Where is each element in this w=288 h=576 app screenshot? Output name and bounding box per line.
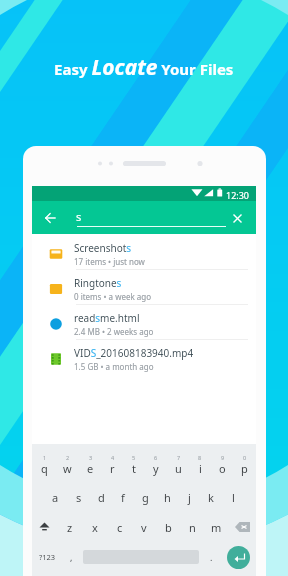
staticText: s xyxy=(76,209,82,224)
staticText: Ringtones xyxy=(74,276,122,290)
button[interactable]: 3 xyxy=(79,448,101,482)
button[interactable]: VIDS_201608183940.mp4 xyxy=(32,339,256,374)
button[interactable]: ?123 xyxy=(32,542,62,572)
staticText: 9 xyxy=(221,454,225,461)
button[interactable]: h xyxy=(156,482,178,512)
button[interactable]: x xyxy=(82,512,107,542)
staticText: c xyxy=(117,520,123,535)
button[interactable]: readsme.html xyxy=(32,304,256,339)
button[interactable]: v xyxy=(132,512,156,542)
button[interactable]: 5 xyxy=(123,448,145,482)
button[interactable]: a xyxy=(44,482,67,512)
button[interactable]: 4 xyxy=(101,448,123,482)
staticText: k xyxy=(208,490,214,505)
staticText: readsme.html xyxy=(74,311,140,325)
staticText: 1 xyxy=(43,454,47,461)
staticText: 2.4 MB • 2 weeks ago xyxy=(74,326,154,337)
staticText: a xyxy=(52,490,59,505)
staticText: x xyxy=(92,520,98,535)
button[interactable]: k xyxy=(200,482,222,512)
button[interactable]: 2 xyxy=(56,448,79,482)
staticText: z xyxy=(67,520,73,535)
button[interactable]: s xyxy=(67,482,90,512)
staticText: . xyxy=(210,551,213,563)
staticText: t xyxy=(132,461,136,476)
button[interactable]: 7 xyxy=(167,448,189,482)
staticText: 1.5 GB • a month ago xyxy=(74,361,154,372)
button[interactable]: l xyxy=(222,482,244,512)
button[interactable]: n xyxy=(180,512,204,542)
staticText: v xyxy=(141,520,147,535)
staticText: s xyxy=(76,490,82,505)
staticText: g xyxy=(142,490,149,505)
button[interactable]: 0 xyxy=(233,448,255,482)
staticText: 12:30 xyxy=(226,189,250,201)
button[interactable]: f xyxy=(112,482,134,512)
staticText: u xyxy=(175,461,182,476)
staticText: Screenshots xyxy=(74,241,132,255)
staticText: r xyxy=(110,461,115,476)
button[interactable]: Shift xyxy=(32,512,57,542)
staticText: 6 xyxy=(154,454,158,461)
staticText: 5 xyxy=(132,454,136,461)
staticText: h xyxy=(164,490,171,505)
staticText: 8 xyxy=(198,454,202,461)
button[interactable]: z xyxy=(57,512,82,542)
button[interactable]: Back xyxy=(40,208,60,228)
button[interactable]: m xyxy=(204,512,228,542)
staticText: i xyxy=(199,461,202,476)
button[interactable]: . xyxy=(202,542,220,572)
staticText: 7 xyxy=(177,454,181,461)
staticText: e xyxy=(87,461,94,476)
staticText: j xyxy=(188,490,191,505)
staticText: 4 xyxy=(111,454,115,461)
button[interactable]: 8 xyxy=(189,448,211,482)
staticText: Easy Locate Your Files xyxy=(54,53,234,82)
staticText: , xyxy=(70,551,73,563)
button[interactable]: c xyxy=(107,512,132,542)
button[interactable]: Backspace xyxy=(228,512,256,542)
staticText: p xyxy=(241,461,248,476)
staticText: w xyxy=(63,461,72,476)
button[interactable]: Clear search xyxy=(227,208,247,228)
button[interactable]: b xyxy=(156,512,180,542)
button[interactable]: , xyxy=(62,542,80,572)
staticText: f xyxy=(121,490,125,505)
button[interactable]: 6 xyxy=(145,448,167,482)
staticText: 3 xyxy=(89,454,93,461)
staticText: 0 xyxy=(243,454,247,461)
button[interactable]: d xyxy=(90,482,112,512)
staticText: m xyxy=(211,520,222,535)
staticText: 2 xyxy=(66,454,70,461)
button[interactable]: Enter xyxy=(220,542,256,572)
button[interactable]: g xyxy=(134,482,156,512)
staticText: n xyxy=(189,520,196,535)
staticText: VIDS_201608183940.mp4 xyxy=(74,346,194,360)
staticText: l xyxy=(232,490,235,505)
staticText: q xyxy=(41,461,48,476)
button[interactable]: Screenshots xyxy=(32,234,256,269)
button[interactable]: 1 xyxy=(33,448,56,482)
staticText: 17 items • just now xyxy=(74,256,145,267)
staticText: y xyxy=(153,461,159,476)
staticText: 0 items • a week ago xyxy=(74,291,152,302)
staticText: ?123 xyxy=(39,552,56,562)
button[interactable]: 9 xyxy=(211,448,233,482)
button[interactable]: j xyxy=(178,482,200,512)
staticText: d xyxy=(98,490,105,505)
staticText: b xyxy=(165,520,172,535)
button[interactable]: Ringtones xyxy=(32,269,256,304)
staticText: o xyxy=(219,461,226,476)
